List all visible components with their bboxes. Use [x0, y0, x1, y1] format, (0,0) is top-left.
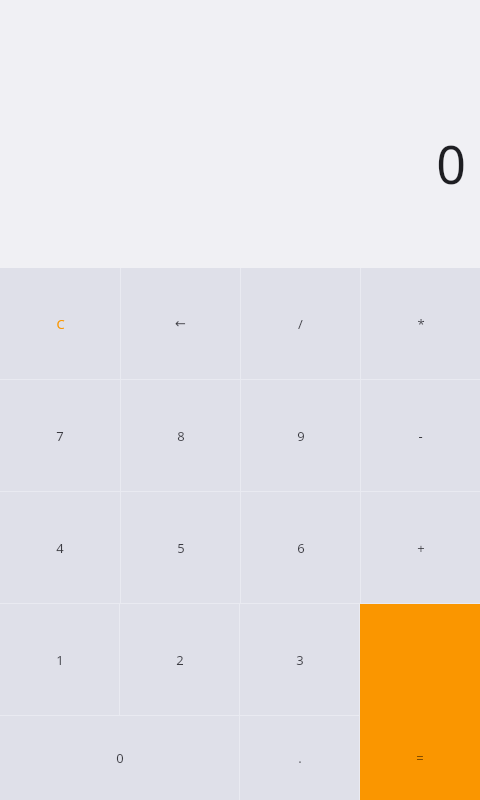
staticText: 9 [297, 427, 305, 445]
staticText: * [417, 315, 425, 333]
button[interactable]: 1 [0, 604, 119, 715]
button[interactable]: / [241, 268, 360, 379]
staticText: 2 [176, 651, 184, 669]
staticText: 3 [296, 651, 304, 669]
button[interactable]: + [361, 492, 480, 603]
staticText: 1 [56, 651, 64, 669]
staticText: . [298, 749, 302, 767]
staticText: 0 [116, 749, 124, 767]
staticText: 0 [436, 128, 466, 199]
staticText: - [418, 427, 423, 445]
staticText: 8 [177, 427, 185, 445]
staticText: 5 [177, 539, 185, 557]
button[interactable]: 5 [121, 492, 240, 603]
button[interactable]: 6 [241, 492, 360, 603]
staticText: + [417, 539, 425, 557]
button[interactable]: * [361, 268, 480, 379]
staticText: = [416, 749, 424, 767]
button[interactable]: 0 [0, 716, 239, 800]
staticText: / [298, 315, 303, 333]
button[interactable]: 4 [0, 492, 120, 603]
staticText: C [56, 315, 65, 333]
button[interactable]: 2 [120, 604, 239, 715]
button[interactable]: 3 [240, 604, 359, 715]
staticText: ← [175, 316, 186, 331]
staticText: 6 [297, 539, 305, 557]
button[interactable]: 9 [241, 380, 360, 491]
button[interactable]: 7 [0, 380, 120, 491]
button[interactable]: 8 [121, 380, 240, 491]
staticText: 4 [56, 539, 64, 557]
staticText: 7 [56, 427, 64, 445]
button[interactable]: ← [121, 268, 240, 379]
button[interactable]: C [0, 268, 120, 379]
